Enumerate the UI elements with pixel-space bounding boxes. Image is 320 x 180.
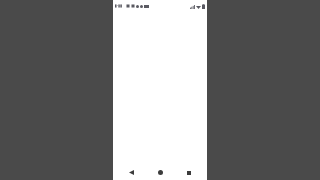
button[interactable]: Recent apps	[178, 165, 200, 180]
button[interactable]: Back	[120, 165, 142, 180]
button[interactable]: Home	[149, 165, 171, 180]
